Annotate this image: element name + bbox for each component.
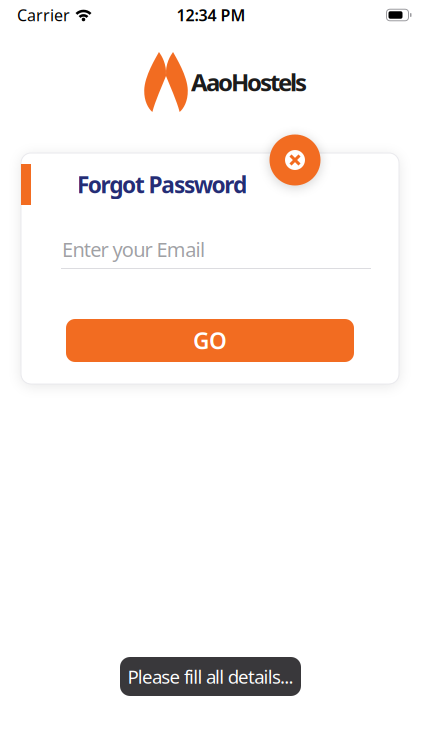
staticText: Forgot Password (77, 169, 247, 199)
button[interactable]: Close (269, 134, 320, 185)
staticText: GO (193, 325, 227, 355)
staticText: Please fill all details... (127, 664, 293, 689)
staticText: Enter your Email (62, 236, 205, 263)
staticText: AaoHostels (191, 66, 307, 98)
button[interactable]: GO (66, 319, 354, 362)
staticText: Carrier (17, 4, 70, 26)
staticText: 12:34 PM (176, 4, 245, 26)
